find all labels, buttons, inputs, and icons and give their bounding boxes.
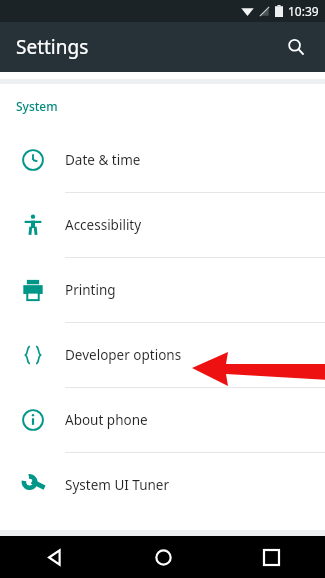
button[interactable]: Accessibility bbox=[0, 193, 325, 258]
button[interactable]: System UI Tuner bbox=[0, 453, 325, 517]
button[interactable]: Recents bbox=[217, 536, 325, 578]
button[interactable]: Printing bbox=[0, 258, 325, 323]
button[interactable]: Search bbox=[277, 28, 315, 66]
button[interactable]: About phone bbox=[0, 388, 325, 453]
staticText: Printing bbox=[65, 281, 116, 299]
button[interactable]: Date & time bbox=[0, 128, 325, 193]
staticText: Settings bbox=[16, 34, 89, 60]
staticText: System bbox=[16, 98, 58, 114]
staticText: Accessibility bbox=[65, 216, 142, 234]
staticText: Developer options bbox=[65, 346, 182, 364]
button[interactable]: Developer options bbox=[0, 323, 325, 388]
staticText: Date & time bbox=[65, 151, 141, 169]
button[interactable]: Home bbox=[109, 536, 217, 578]
staticText: System UI Tuner bbox=[65, 476, 170, 494]
staticText: About phone bbox=[65, 411, 148, 429]
button[interactable]: Back bbox=[0, 536, 109, 578]
staticText: 10:39 bbox=[288, 3, 319, 19]
